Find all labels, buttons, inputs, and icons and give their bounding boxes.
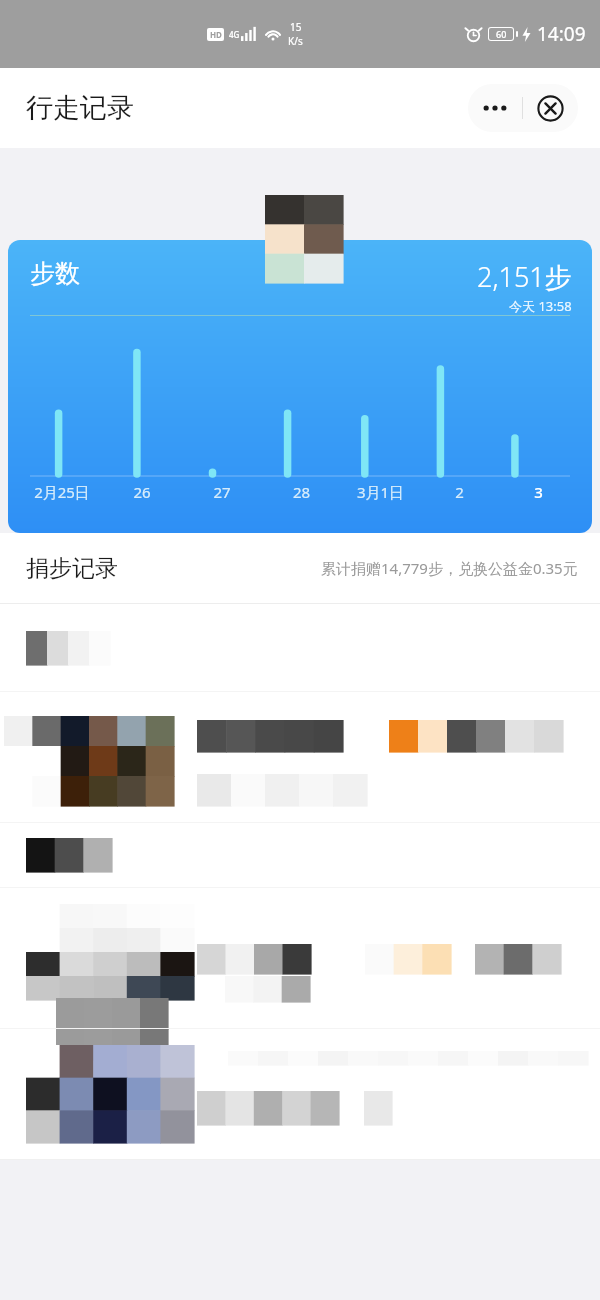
staticText: 捐步记录 [26,554,118,583]
staticText: 4G [229,29,240,40]
staticText: 2月25日 [22,482,102,502]
staticText: 2,151步 [477,258,572,295]
staticText: 步数 [30,258,80,289]
staticText: K/s [288,34,303,48]
staticText: 28 [262,482,341,502]
button[interactable]: More options [468,84,522,132]
staticText: 今天 13:58 [509,297,572,315]
staticText: 行走记录 [26,91,134,125]
staticText: 14:09 [537,21,586,47]
button[interactable] [0,823,600,887]
staticText: 60 [496,28,507,40]
staticText: 累计捐赠14,779步，兑换公益金0.35元 [321,558,578,578]
button[interactable] [0,692,600,822]
staticText: 2 [420,482,499,502]
staticText: 3月1日 [341,482,420,502]
staticText: 27 [182,482,262,502]
button[interactable] [0,1029,600,1159]
button[interactable] [0,604,600,691]
staticText: 15 [290,20,302,34]
button[interactable]: Close [523,84,578,132]
staticText: HD [210,29,222,40]
button[interactable] [0,888,600,1028]
staticText: 26 [102,482,182,502]
staticText: 3 [499,482,578,502]
button[interactable]: 步数 [8,240,592,533]
